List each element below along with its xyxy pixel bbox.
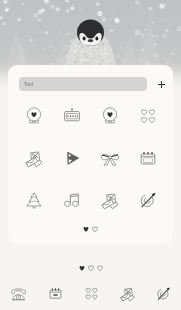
button[interactable]: Music [53, 179, 91, 221]
button[interactable]: Compose [145, 276, 181, 310]
button[interactable]: Gift bow [91, 137, 129, 179]
button[interactable]: Radio [53, 95, 91, 137]
button[interactable]: Messages [91, 179, 129, 221]
button[interactable]: Compose [129, 179, 167, 221]
button[interactable]: Favourites [129, 95, 167, 137]
button[interactable]: Favourites [73, 276, 109, 310]
button[interactable]: Messages [109, 276, 145, 310]
button[interactable]: Tree [14, 179, 53, 221]
button[interactable]: Play [53, 137, 91, 179]
button[interactable]: Calendar [129, 137, 167, 179]
button[interactable]: Add [154, 77, 168, 91]
button[interactable]: Calendar [37, 276, 73, 310]
staticText: Tool [24, 81, 33, 87]
button[interactable]: Phone [0, 276, 37, 310]
button[interactable]: Snow globe [14, 95, 53, 137]
button[interactable]: Tool [19, 77, 147, 91]
button[interactable]: Snow globe [91, 95, 129, 137]
button[interactable]: Messages [14, 137, 53, 179]
